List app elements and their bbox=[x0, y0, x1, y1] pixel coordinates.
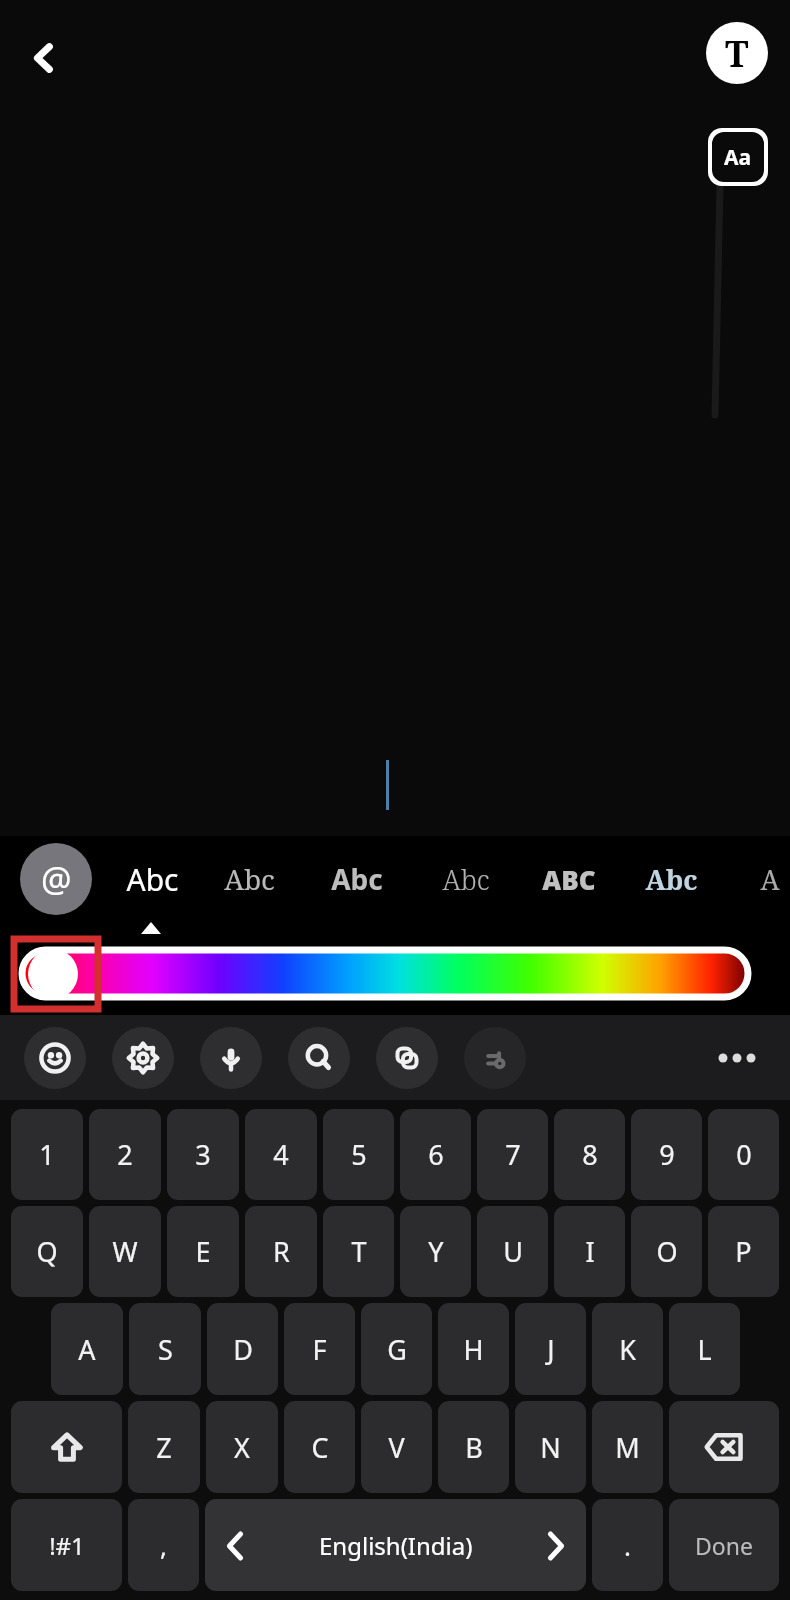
staticText: 3 bbox=[195, 1136, 211, 1173]
staticText: Abc bbox=[224, 860, 275, 898]
button[interactable]: 4 bbox=[245, 1109, 317, 1200]
button[interactable]: Text style bbox=[706, 22, 768, 84]
button[interactable]: ABC bbox=[525, 846, 613, 912]
button[interactable]: X bbox=[206, 1401, 278, 1493]
button[interactable]: Colour slider bbox=[22, 950, 748, 997]
staticText: W bbox=[112, 1233, 138, 1270]
staticText: P bbox=[735, 1233, 752, 1270]
button[interactable]: More options bbox=[706, 1027, 768, 1089]
staticText: L bbox=[697, 1331, 712, 1368]
button[interactable]: D bbox=[207, 1303, 278, 1395]
staticText: B bbox=[465, 1429, 483, 1466]
button[interactable]: K bbox=[592, 1303, 663, 1395]
staticText: Z bbox=[156, 1429, 172, 1466]
button[interactable]: O bbox=[631, 1206, 702, 1297]
button[interactable]: Done bbox=[669, 1499, 779, 1591]
button[interactable]: Mention bbox=[20, 843, 92, 915]
button[interactable]: Emoji bbox=[24, 1027, 86, 1089]
button[interactable]: Font size bbox=[708, 128, 768, 186]
button[interactable]: G bbox=[361, 1303, 432, 1395]
button[interactable]: L bbox=[669, 1303, 740, 1395]
staticText: 6 bbox=[428, 1136, 444, 1173]
button[interactable]: F bbox=[284, 1303, 355, 1395]
staticText: Abc bbox=[442, 861, 490, 898]
button[interactable]: !#1 bbox=[11, 1499, 122, 1591]
button[interactable]: B bbox=[438, 1401, 509, 1493]
button[interactable]: 3 bbox=[167, 1109, 239, 1200]
button[interactable]: P bbox=[708, 1206, 779, 1297]
button[interactable]: J bbox=[515, 1303, 586, 1395]
button[interactable]: Voice input bbox=[200, 1027, 262, 1089]
button[interactable]: 0 bbox=[708, 1109, 779, 1200]
button[interactable]: Abc bbox=[313, 846, 401, 912]
staticText: Y bbox=[428, 1233, 444, 1270]
button[interactable]: Auto correct bbox=[464, 1027, 526, 1089]
staticText: Abc bbox=[645, 861, 698, 898]
button[interactable]: Settings bbox=[112, 1027, 174, 1089]
staticText: Done bbox=[695, 1530, 753, 1561]
button[interactable]: H bbox=[438, 1303, 509, 1395]
staticText: U bbox=[503, 1233, 523, 1270]
button[interactable]: , bbox=[128, 1499, 199, 1591]
button[interactable]: N bbox=[515, 1401, 586, 1493]
button[interactable]: Q bbox=[11, 1206, 83, 1297]
button[interactable]: Y bbox=[400, 1206, 471, 1297]
button[interactable]: . bbox=[592, 1499, 663, 1591]
staticText: T bbox=[725, 29, 749, 78]
button[interactable]: 6 bbox=[400, 1109, 471, 1200]
button[interactable]: 9 bbox=[631, 1109, 702, 1200]
staticText: @ bbox=[41, 856, 72, 902]
staticText: T bbox=[351, 1233, 367, 1270]
staticText: 8 bbox=[582, 1136, 598, 1173]
button[interactable]: V bbox=[361, 1401, 432, 1493]
button[interactable]: Abc bbox=[108, 846, 196, 912]
staticText: E bbox=[195, 1233, 211, 1270]
button[interactable]: 5 bbox=[323, 1109, 394, 1200]
button[interactable]: Search bbox=[288, 1027, 350, 1089]
staticText: A bbox=[78, 1331, 96, 1368]
button[interactable]: M bbox=[592, 1401, 663, 1493]
staticText: ABC bbox=[542, 862, 596, 897]
button[interactable]: Shift bbox=[11, 1401, 122, 1493]
button[interactable]: Translate bbox=[376, 1027, 438, 1089]
button[interactable]: Backspace bbox=[669, 1401, 779, 1493]
staticText: Abc bbox=[126, 859, 179, 900]
button[interactable]: I bbox=[554, 1206, 625, 1297]
button[interactable]: 8 bbox=[554, 1109, 625, 1200]
button[interactable]: C bbox=[284, 1401, 355, 1493]
staticText: 0 bbox=[736, 1136, 752, 1173]
button[interactable]: Z bbox=[128, 1401, 200, 1493]
button[interactable]: Abc bbox=[422, 846, 510, 912]
staticText: V bbox=[388, 1429, 405, 1466]
staticText: , bbox=[160, 1528, 167, 1563]
button[interactable]: Abc bbox=[205, 846, 293, 912]
button[interactable]: 2 bbox=[89, 1109, 161, 1200]
staticText: 1 bbox=[39, 1136, 55, 1173]
staticText: J bbox=[547, 1331, 555, 1368]
button[interactable]: A bbox=[726, 846, 790, 912]
staticText: H bbox=[463, 1331, 484, 1368]
button[interactable]: U bbox=[477, 1206, 548, 1297]
staticText: X bbox=[234, 1429, 250, 1466]
button[interactable]: S bbox=[129, 1303, 201, 1395]
button[interactable]: A bbox=[51, 1303, 123, 1395]
staticText: S bbox=[158, 1331, 173, 1368]
button[interactable]: 7 bbox=[477, 1109, 548, 1200]
staticText: A bbox=[760, 861, 780, 898]
staticText: O bbox=[656, 1233, 678, 1270]
button[interactable]: Back bbox=[14, 28, 74, 88]
staticText: 5 bbox=[351, 1136, 367, 1173]
button[interactable]: R bbox=[245, 1206, 317, 1297]
button[interactable]: T bbox=[323, 1206, 394, 1297]
staticText: K bbox=[619, 1331, 636, 1368]
button[interactable]: E bbox=[167, 1206, 239, 1297]
staticText: M bbox=[615, 1429, 640, 1466]
button[interactable]: Abc bbox=[627, 846, 715, 912]
button[interactable]: English(India) bbox=[205, 1499, 586, 1591]
button[interactable]: W bbox=[89, 1206, 161, 1297]
staticText: R bbox=[273, 1233, 290, 1270]
button[interactable]: 1 bbox=[11, 1109, 83, 1200]
staticText: 4 bbox=[273, 1136, 289, 1173]
staticText: English(India) bbox=[319, 1529, 473, 1562]
staticText: Abc bbox=[331, 860, 383, 898]
